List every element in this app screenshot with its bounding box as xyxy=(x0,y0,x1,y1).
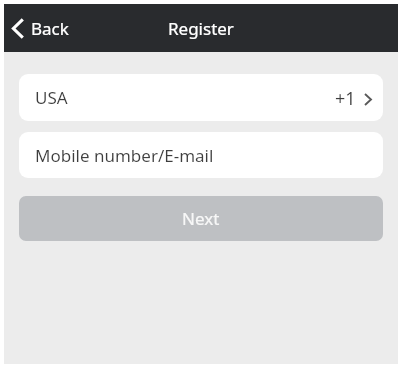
other: Back xyxy=(12,18,24,39)
button[interactable]: Back xyxy=(4,9,81,48)
staticText: +1 xyxy=(335,86,356,111)
staticText: Back xyxy=(31,17,69,40)
staticText: USA xyxy=(35,86,68,109)
staticText: Next xyxy=(182,207,220,230)
staticText: Mobile number/E-mail xyxy=(35,144,214,167)
button[interactable]: USA xyxy=(19,74,383,121)
button[interactable]: Mobile number/E-mail xyxy=(19,132,383,178)
staticText: Register xyxy=(168,17,234,40)
button[interactable]: Next xyxy=(19,196,383,241)
